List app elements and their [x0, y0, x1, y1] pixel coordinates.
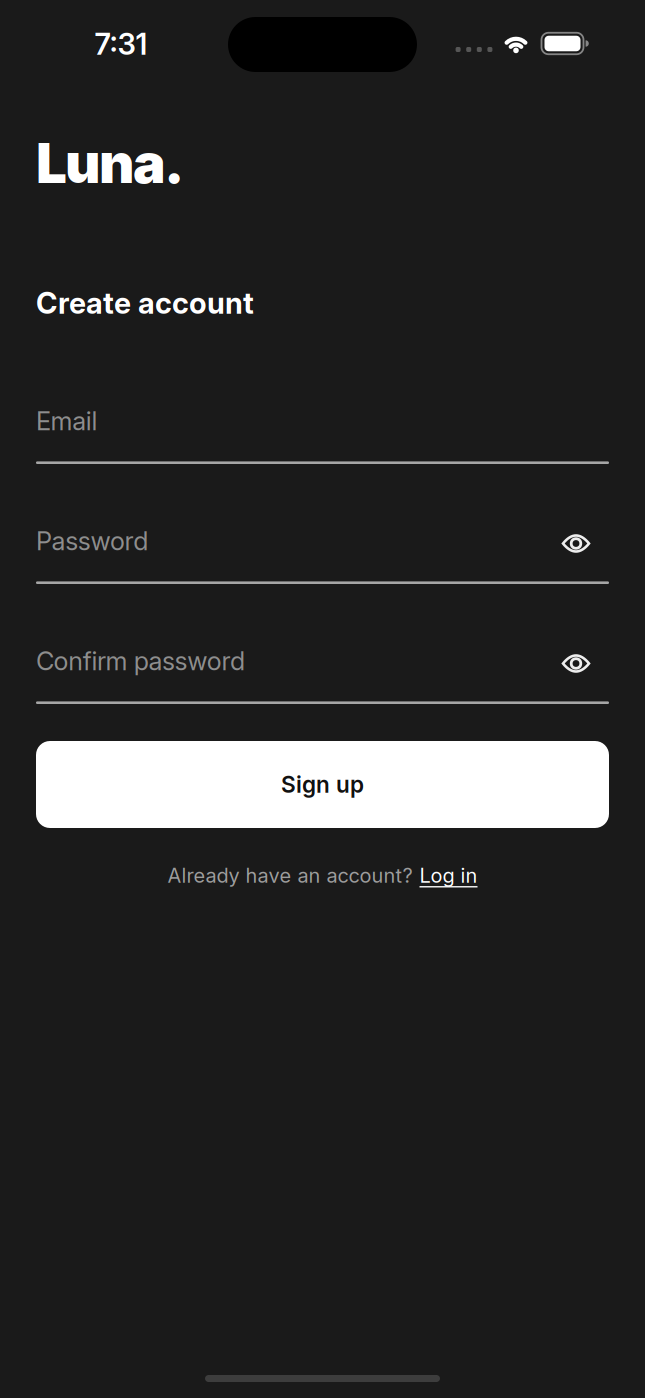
button[interactable]: Email [36, 406, 609, 464]
button[interactable]: Sign up [36, 741, 609, 828]
staticText: Sign up [281, 771, 364, 798]
button[interactable] [559, 526, 593, 560]
staticText: 7:31 [94, 27, 147, 61]
button[interactable]: Log in [419, 864, 477, 887]
button[interactable] [559, 646, 593, 680]
staticText: Password [36, 526, 148, 556]
staticText: Email [36, 406, 97, 436]
staticText: Log in [419, 864, 477, 887]
button[interactable]: Password [36, 526, 609, 584]
staticText: Create account [36, 286, 254, 320]
button[interactable]: Confirm password [36, 646, 609, 704]
staticText: Luna. [36, 131, 184, 195]
staticText: Already have an account? [167, 864, 412, 887]
staticText: Confirm password [36, 646, 245, 676]
